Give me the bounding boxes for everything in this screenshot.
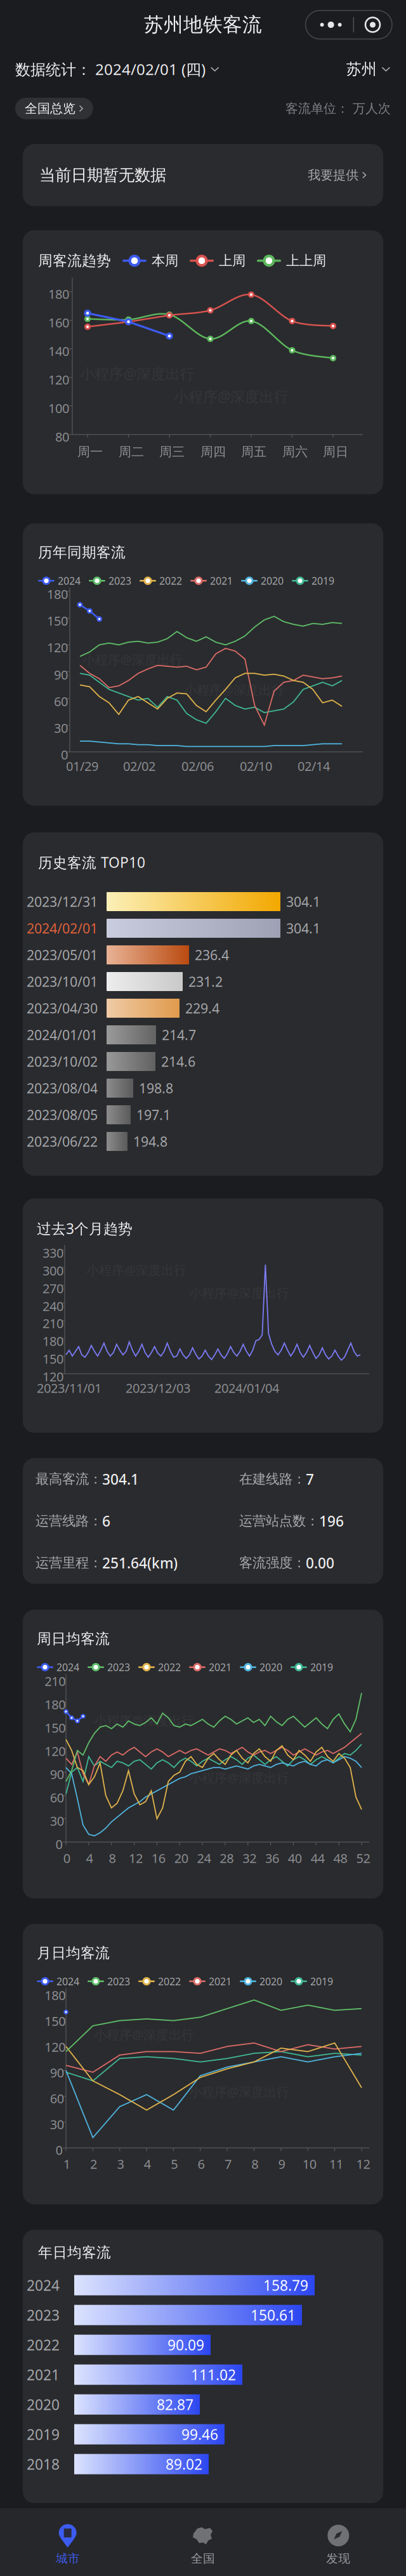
staticText: 160 (48, 314, 69, 331)
staticText: 240 (43, 1298, 63, 1314)
button[interactable]: 全国 (135, 2523, 271, 2566)
staticText: 2018 (27, 2455, 60, 2474)
staticText: 210 (45, 1673, 65, 1690)
staticText: 44 (311, 1850, 325, 1867)
staticText: 苏州 (346, 60, 377, 79)
staticText: 小程序@深度出行 (80, 364, 195, 383)
staticText: 8 (109, 1850, 116, 1867)
staticText: 6 (198, 2156, 205, 2172)
staticText: 251.64(km) (102, 1553, 178, 1572)
staticText: 2019 (310, 1975, 333, 1988)
staticText: 198.8 (139, 1079, 173, 1097)
staticText: 小程序@深度出行 (94, 1712, 194, 1729)
staticText: 2024 (27, 2276, 60, 2295)
staticText: 2024 (56, 1975, 79, 1988)
staticText: 0 (63, 1850, 70, 1867)
staticText: 89.02 (166, 2455, 202, 2474)
button[interactable]: 数据统计： 2024/02/01 (四) (15, 59, 220, 79)
staticText: 2023/12/31 (27, 893, 98, 911)
staticText: 运营里程： (36, 1554, 102, 1571)
staticText: 140 (48, 342, 69, 359)
staticText: 0.00 (306, 1553, 334, 1572)
staticText: 小程序@深度出行 (86, 1261, 187, 1278)
staticText: 0 (55, 1836, 62, 1853)
button[interactable]: 城市 (0, 2523, 135, 2566)
button[interactable]: 发现 (271, 2523, 406, 2566)
staticText: 2021 (210, 574, 233, 587)
staticText: 30 (50, 1812, 64, 1829)
staticText: 上上周 (286, 252, 326, 269)
staticText: 01/29 (66, 758, 98, 774)
staticText: 60 (54, 693, 68, 710)
staticText: 304.1 (286, 893, 320, 911)
staticText: 12 (356, 2156, 370, 2172)
staticText: 3 (117, 2156, 124, 2172)
staticText: 8 (251, 2156, 258, 2172)
staticText: 本周 (152, 252, 178, 269)
staticText: 2021 (209, 1975, 232, 1988)
staticText: 2019 (311, 574, 334, 587)
staticText: 120 (45, 1743, 65, 1759)
staticText: 2023/11/01 (37, 1379, 101, 1396)
staticText: 周一 (77, 444, 103, 460)
staticText: 11 (329, 2156, 343, 2172)
staticText: 36 (265, 1850, 279, 1867)
button[interactable]: 更多 (306, 10, 392, 39)
staticText: 2023/04/30 (27, 999, 98, 1017)
staticText: 2023/06/22 (27, 1132, 98, 1150)
staticText: 运营线路： (36, 1513, 102, 1529)
staticText: 180 (45, 1696, 65, 1713)
staticText: 180 (45, 1987, 65, 2004)
staticText: 02/06 (181, 758, 214, 774)
staticText: 2023/05/01 (27, 946, 98, 964)
staticText: 4 (86, 1850, 93, 1867)
staticText: 客流强度： (239, 1554, 306, 1571)
staticText: 周五 (241, 444, 266, 460)
staticText: 2023/10/02 (27, 1053, 98, 1070)
staticText: 历年同期客流 (38, 544, 126, 561)
staticText: 小程序@深度出行 (94, 2026, 194, 2043)
staticText: 24 (197, 1850, 211, 1867)
staticText: 180 (43, 1332, 63, 1349)
staticText: 2021 (27, 2365, 60, 2384)
staticText: 2023/08/05 (27, 1106, 98, 1124)
staticText: 最高客流： (36, 1471, 102, 1487)
staticText: 2021 (209, 1660, 232, 1674)
button[interactable]: 我要提供 (308, 167, 367, 183)
staticText: 197.1 (136, 1106, 171, 1124)
staticText: 过去3个月趋势 (37, 1219, 133, 1238)
staticText: 9 (278, 2156, 285, 2172)
staticText: 270 (43, 1280, 63, 1297)
staticText: 150.61 (251, 2305, 296, 2325)
staticText: 2024 (56, 1660, 79, 1674)
staticText: 全国 (191, 2551, 215, 2566)
staticText: 120 (43, 1368, 63, 1385)
staticText: 60 (50, 1789, 64, 1806)
staticText: 196 (319, 1511, 344, 1530)
button[interactable]: 全国总览 (15, 98, 93, 119)
staticText: 100 (48, 400, 69, 416)
staticText: 150 (45, 1719, 65, 1736)
staticText: 2023/12/03 (126, 1379, 190, 1396)
staticText: 32 (242, 1850, 256, 1867)
staticText: 30 (50, 2116, 64, 2133)
staticText: 80 (55, 428, 69, 445)
staticText: 2022 (158, 1975, 181, 1988)
staticText: 城市 (56, 2551, 80, 2566)
staticText: 2023 (107, 1660, 130, 1674)
staticText: 214.7 (162, 1026, 196, 1044)
staticText: 180 (48, 285, 69, 302)
staticText: 158.79 (263, 2276, 308, 2295)
staticText: 小程序@深度出行 (189, 1769, 289, 1786)
staticText: 客流单位： 万人次 (285, 101, 391, 116)
staticText: 229.4 (185, 999, 219, 1017)
staticText: 周日均客流 (37, 1630, 110, 1648)
staticText: 2023/08/04 (27, 1079, 98, 1097)
staticText: 周六 (282, 444, 308, 460)
button[interactable]: 苏州 (346, 60, 391, 79)
staticText: 2019 (310, 1660, 333, 1674)
staticText: 300 (43, 1262, 63, 1279)
staticText: 苏州地铁客流 (144, 13, 262, 37)
staticText: 12 (129, 1850, 143, 1867)
staticText: 6 (102, 1511, 110, 1530)
